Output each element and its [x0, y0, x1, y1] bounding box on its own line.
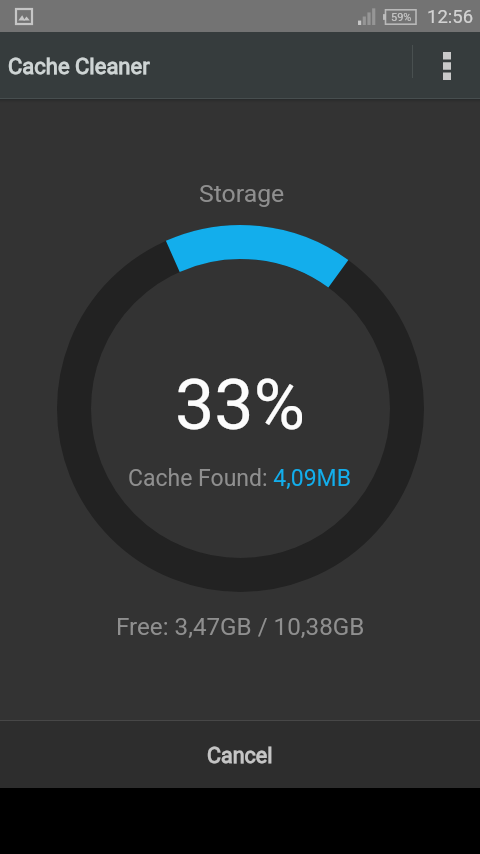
staticText: 12:56	[427, 6, 474, 28]
button[interactable]: Cancel	[0, 721, 480, 788]
button[interactable]: More options	[415, 32, 480, 98]
staticText: Storage	[199, 179, 285, 208]
staticText: Cache Cleaner	[8, 54, 150, 80]
staticText: Cancel	[207, 743, 273, 768]
staticText: 33%	[175, 364, 305, 446]
staticText: Cache Found: 4,09MB	[128, 465, 352, 492]
staticText: 59%	[391, 11, 412, 24]
staticText: Free: 3,47GB / 10,38GB	[116, 613, 365, 641]
